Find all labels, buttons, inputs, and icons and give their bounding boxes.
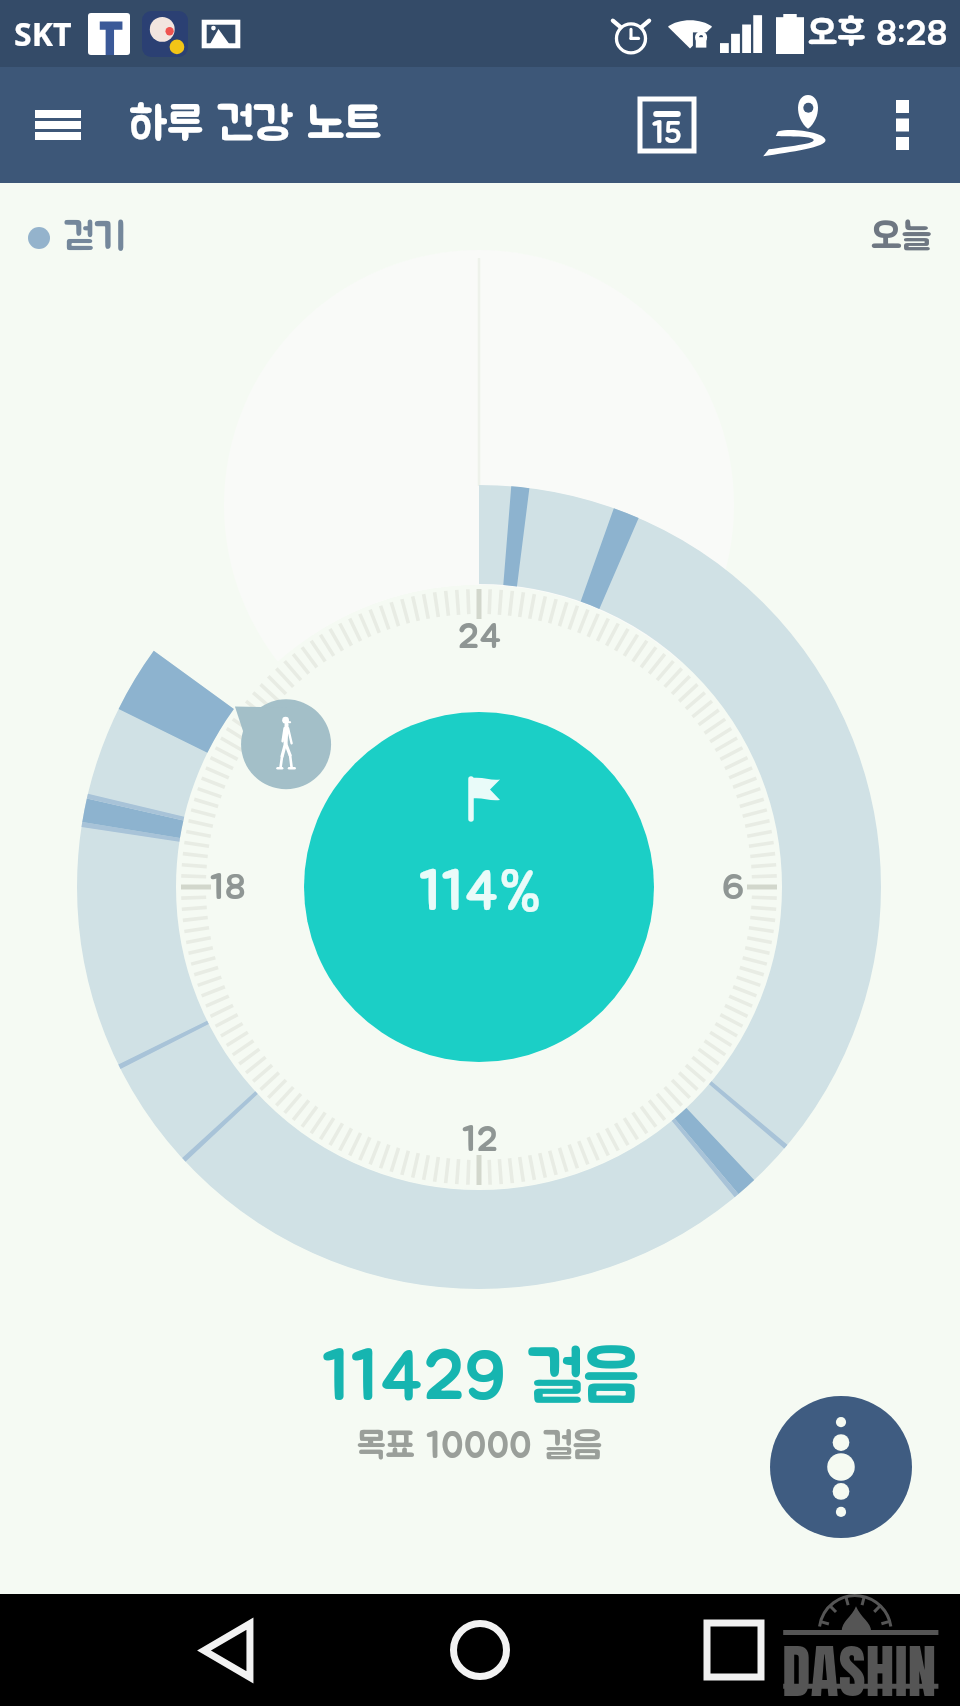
staticText: 24 (458, 619, 502, 655)
staticText: 18 (210, 870, 246, 906)
button[interactable]: 오늘 (867, 211, 936, 265)
staticText: 6 (722, 870, 745, 906)
staticText: 걷기 (64, 219, 126, 257)
button[interactable]: Calendar (615, 67, 719, 183)
button[interactable]: Back (172, 1594, 282, 1706)
button[interactable]: Home (425, 1594, 535, 1706)
button[interactable]: Recent apps (679, 1594, 789, 1706)
button[interactable]: 걷기 (24, 211, 130, 265)
button[interactable]: More options (849, 67, 955, 183)
button[interactable]: Route (740, 67, 848, 183)
staticText: 오늘 (871, 219, 932, 257)
staticText: 114% (419, 866, 542, 921)
staticText: SKT (14, 12, 72, 56)
staticText: 목표 10000 걸음 (357, 1428, 603, 1465)
staticText: 하루 건강 노트 (129, 102, 382, 148)
staticText: DASHIN (782, 1628, 937, 1706)
staticText: 12 (462, 1122, 498, 1158)
button[interactable]: Open navigation menu (0, 67, 116, 183)
staticText: 오후 8:28 (808, 16, 948, 52)
staticText: 11429 걸음 (322, 1344, 639, 1414)
staticText: 15 (652, 119, 682, 149)
button[interactable]: More actions (770, 1396, 912, 1538)
